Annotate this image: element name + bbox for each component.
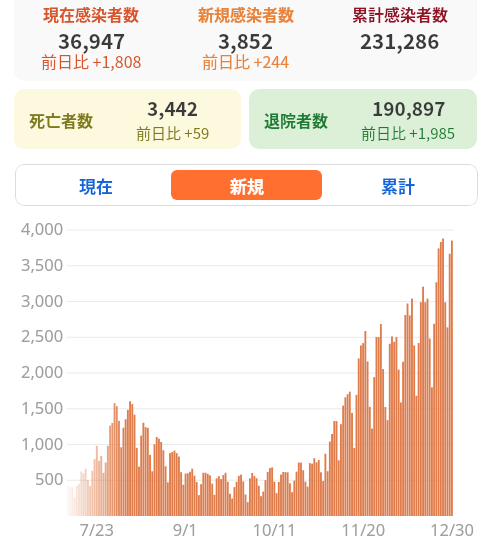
button[interactable]: 現在 bbox=[20, 170, 171, 200]
staticText: 累計 bbox=[381, 173, 415, 198]
staticText: 前日比 +59 bbox=[136, 122, 210, 144]
staticText: 前日比 +1,985 bbox=[361, 122, 456, 144]
button[interactable]: 新規 bbox=[171, 170, 322, 200]
staticText: 3,442 bbox=[147, 94, 199, 122]
button[interactable]: 死亡者数 bbox=[14, 89, 241, 149]
staticText: 現在感染者数 bbox=[43, 2, 140, 25]
staticText: 新規感染者数 bbox=[198, 2, 295, 25]
button[interactable]: 新規感染者数 bbox=[169, 0, 323, 81]
staticText: 現在 bbox=[79, 173, 113, 198]
button[interactable]: 現在感染者数 bbox=[14, 0, 169, 81]
button[interactable]: 累計 bbox=[322, 170, 473, 200]
staticText: 36,947 bbox=[58, 25, 126, 55]
staticText: 前日比 +1,808 bbox=[41, 49, 142, 72]
staticText: 退院者数 bbox=[264, 108, 329, 131]
staticText: 3,852 bbox=[218, 25, 274, 55]
button[interactable]: 累計感染者数 bbox=[323, 0, 477, 81]
staticText: 累計感染者数 bbox=[352, 2, 449, 25]
staticText: 前日比 +244 bbox=[202, 49, 290, 72]
button[interactable]: 退院者数 bbox=[249, 89, 477, 149]
staticText: 190,897 bbox=[372, 94, 446, 122]
staticText: 231,286 bbox=[360, 25, 440, 55]
staticText: 新規 bbox=[230, 173, 264, 198]
staticText: 死亡者数 bbox=[29, 108, 94, 131]
